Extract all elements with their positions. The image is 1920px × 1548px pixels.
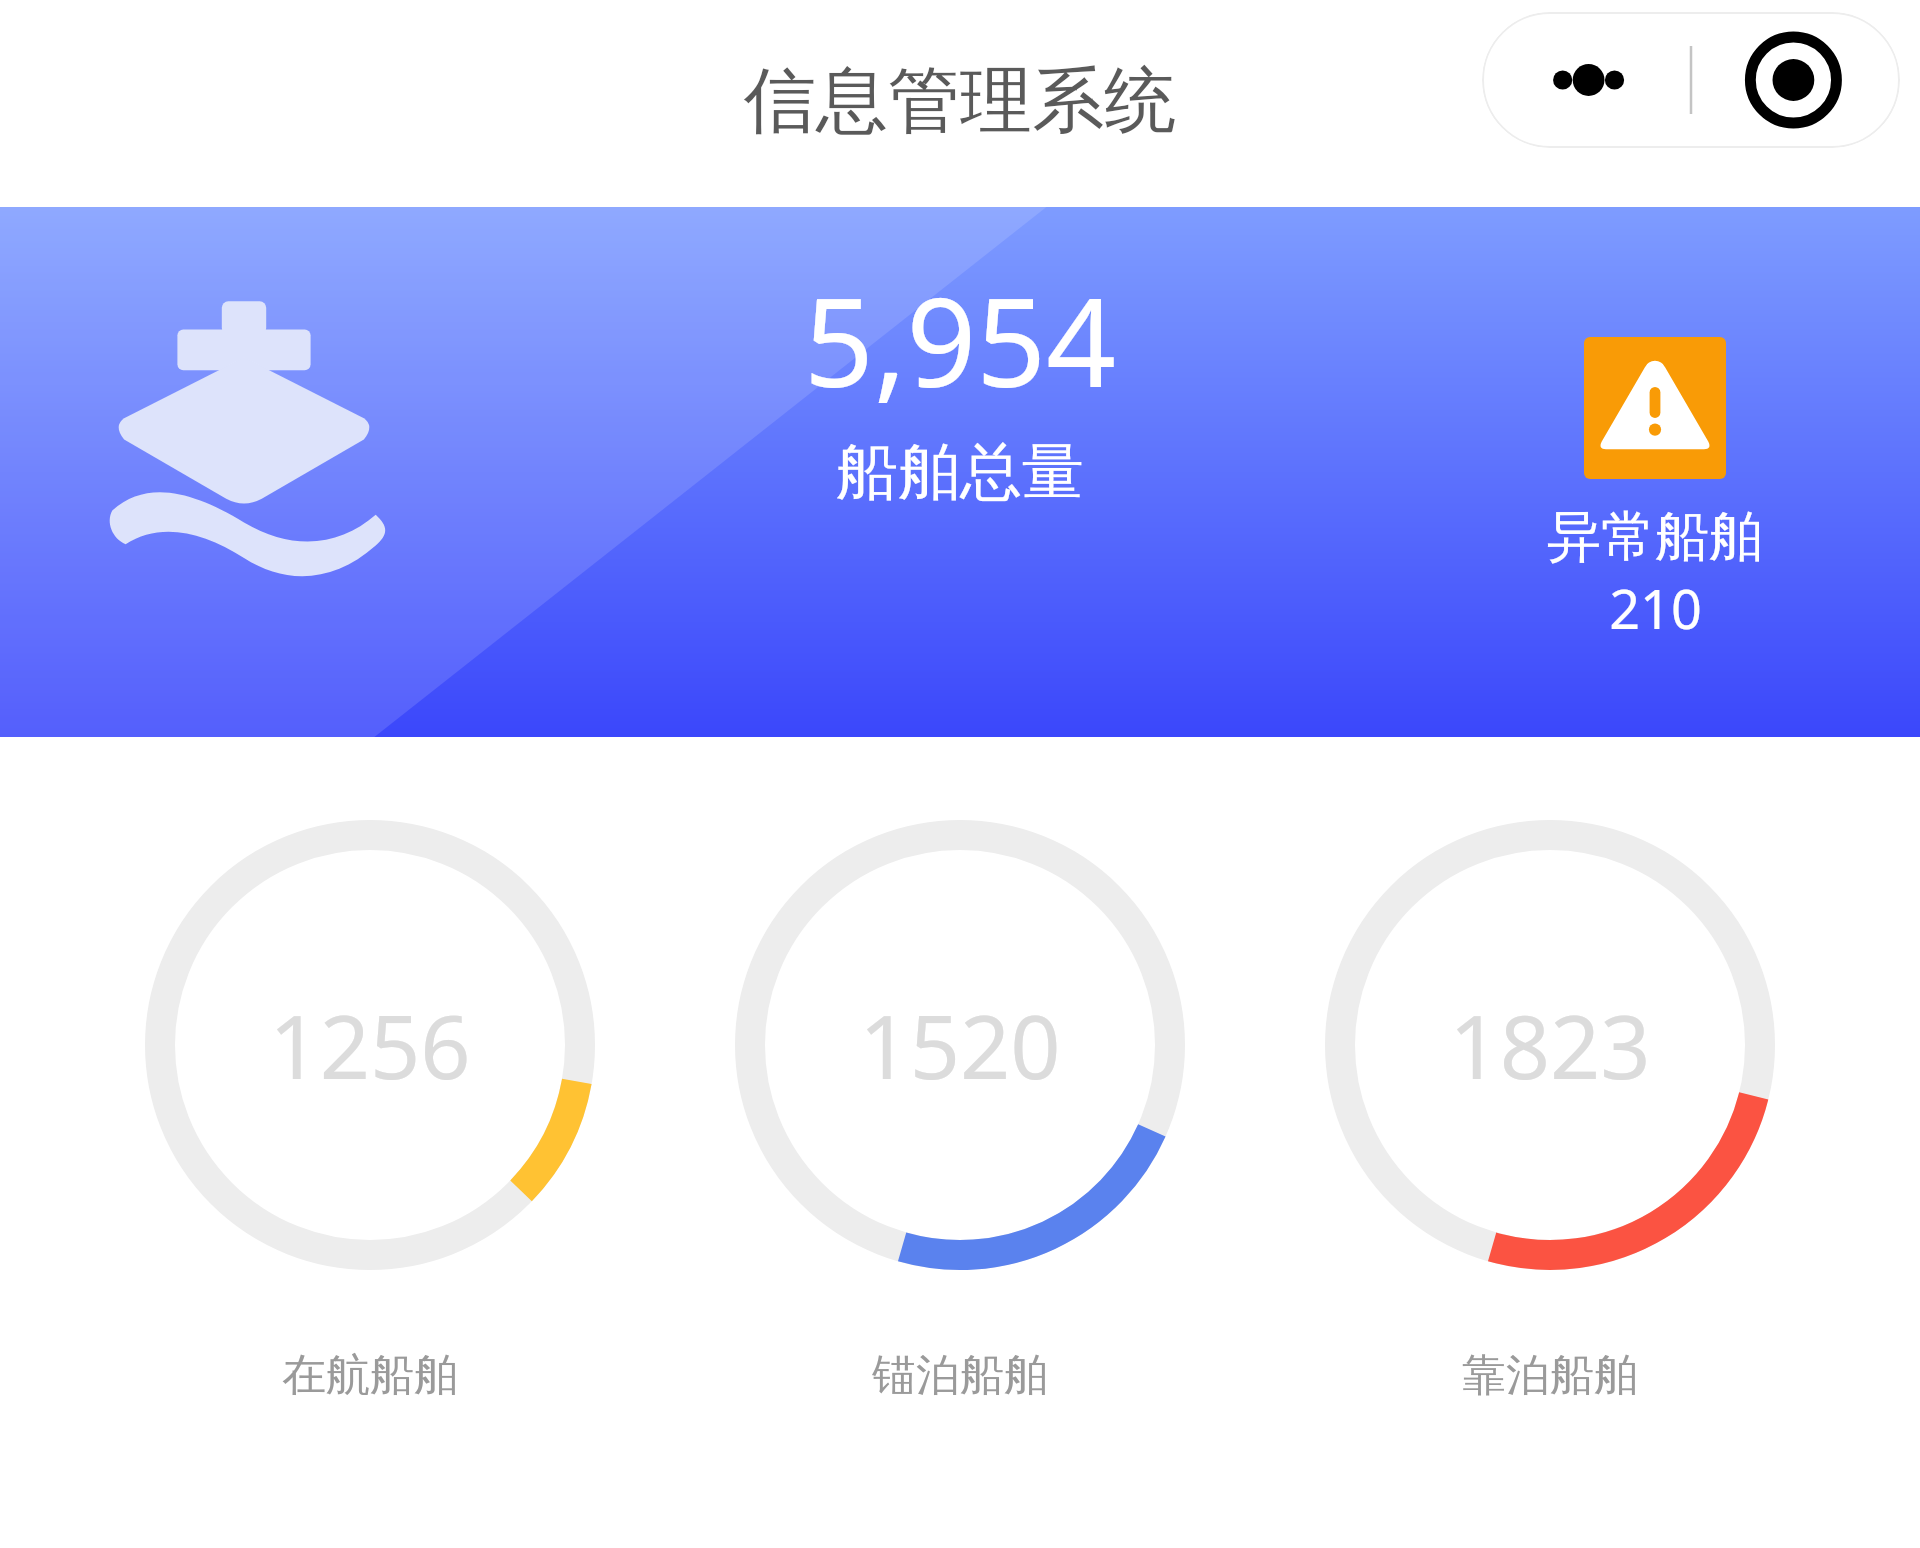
button[interactable]: 1520 xyxy=(735,820,1185,1403)
button[interactable]: 1256 xyxy=(145,820,595,1403)
staticText: 异常船舶 xyxy=(1547,503,1763,571)
staticText: 靠泊船舶 xyxy=(1462,1348,1638,1403)
button[interactable]: 1823 xyxy=(1325,820,1775,1403)
staticText: 1520 xyxy=(859,985,1061,1105)
staticText: 信息管理系统 xyxy=(0,56,1920,147)
other: Abnormal vessels warning xyxy=(1584,337,1726,479)
staticText: 210 xyxy=(1609,571,1702,645)
staticText: 1256 xyxy=(269,985,471,1105)
staticText: 5,954 xyxy=(804,257,1116,423)
staticText: 船舶总量 xyxy=(836,433,1084,511)
staticText: 1823 xyxy=(1449,985,1651,1105)
button[interactable]: Abnormal vessels warning xyxy=(1490,337,1820,645)
button[interactable]: More options and exit mini program xyxy=(1482,12,1900,148)
staticText: 锚泊船舶 xyxy=(872,1348,1048,1403)
staticText: 在航船舶 xyxy=(282,1348,458,1403)
